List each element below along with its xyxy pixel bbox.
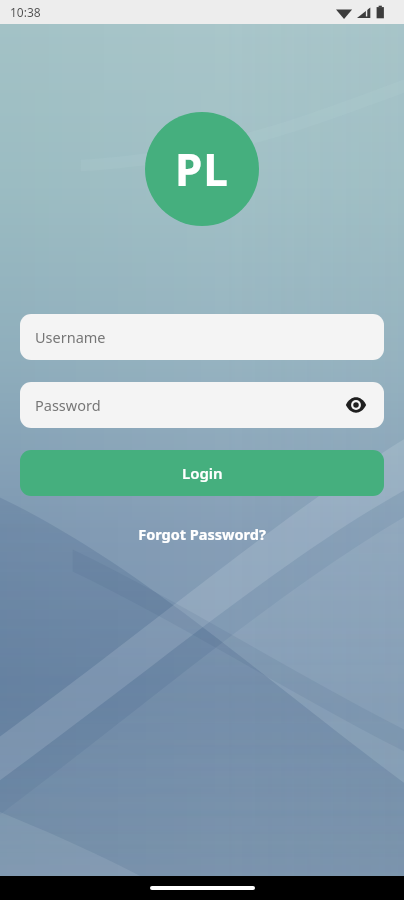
staticText: Login [182, 463, 223, 483]
staticText: Password [35, 395, 101, 415]
button[interactable]: Forgot Password? [128, 518, 276, 550]
button[interactable]: Username [20, 314, 384, 360]
staticText: Username [35, 327, 106, 347]
staticText: 10:38 [10, 4, 41, 20]
button[interactable]: Login [20, 450, 384, 496]
staticText: Forgot Password? [138, 524, 266, 544]
button[interactable]: Show password [340, 389, 372, 421]
button[interactable]: Password [20, 382, 384, 428]
staticText: PL [175, 139, 229, 199]
